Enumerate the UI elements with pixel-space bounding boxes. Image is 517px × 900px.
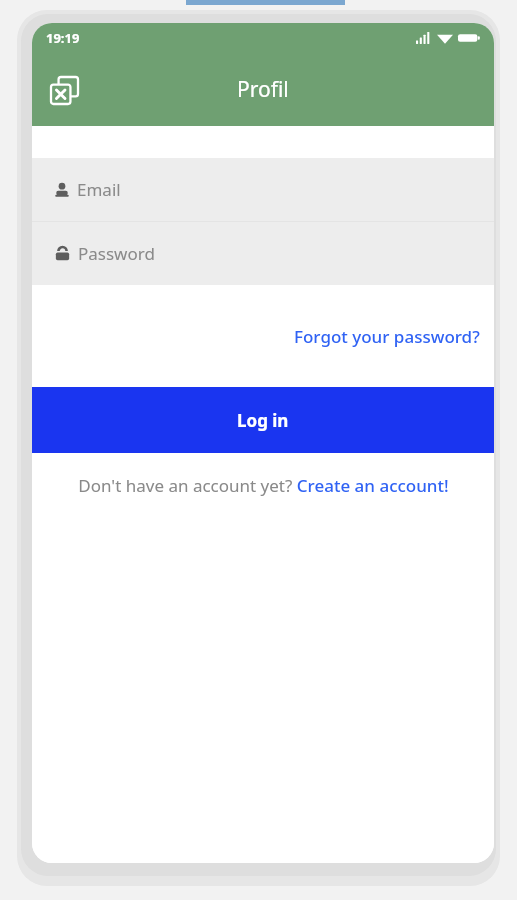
button[interactable]: Close xyxy=(40,66,88,114)
staticText: Email xyxy=(77,178,121,201)
staticText: Log in xyxy=(237,409,289,432)
button[interactable]: Don't have an account yet? Create an acc… xyxy=(70,468,457,503)
staticText: Forgot your password? xyxy=(294,325,480,348)
button[interactable]: Log in xyxy=(32,387,494,453)
button[interactable]: Password xyxy=(32,222,494,285)
button[interactable]: Forgot your password? xyxy=(288,319,486,354)
staticText: Profil xyxy=(237,75,289,104)
button[interactable]: Email xyxy=(32,158,494,221)
staticText: Password xyxy=(78,242,155,265)
staticText: Don't have an account yet? Create an acc… xyxy=(78,474,449,497)
staticText: 19:19 xyxy=(46,29,80,47)
